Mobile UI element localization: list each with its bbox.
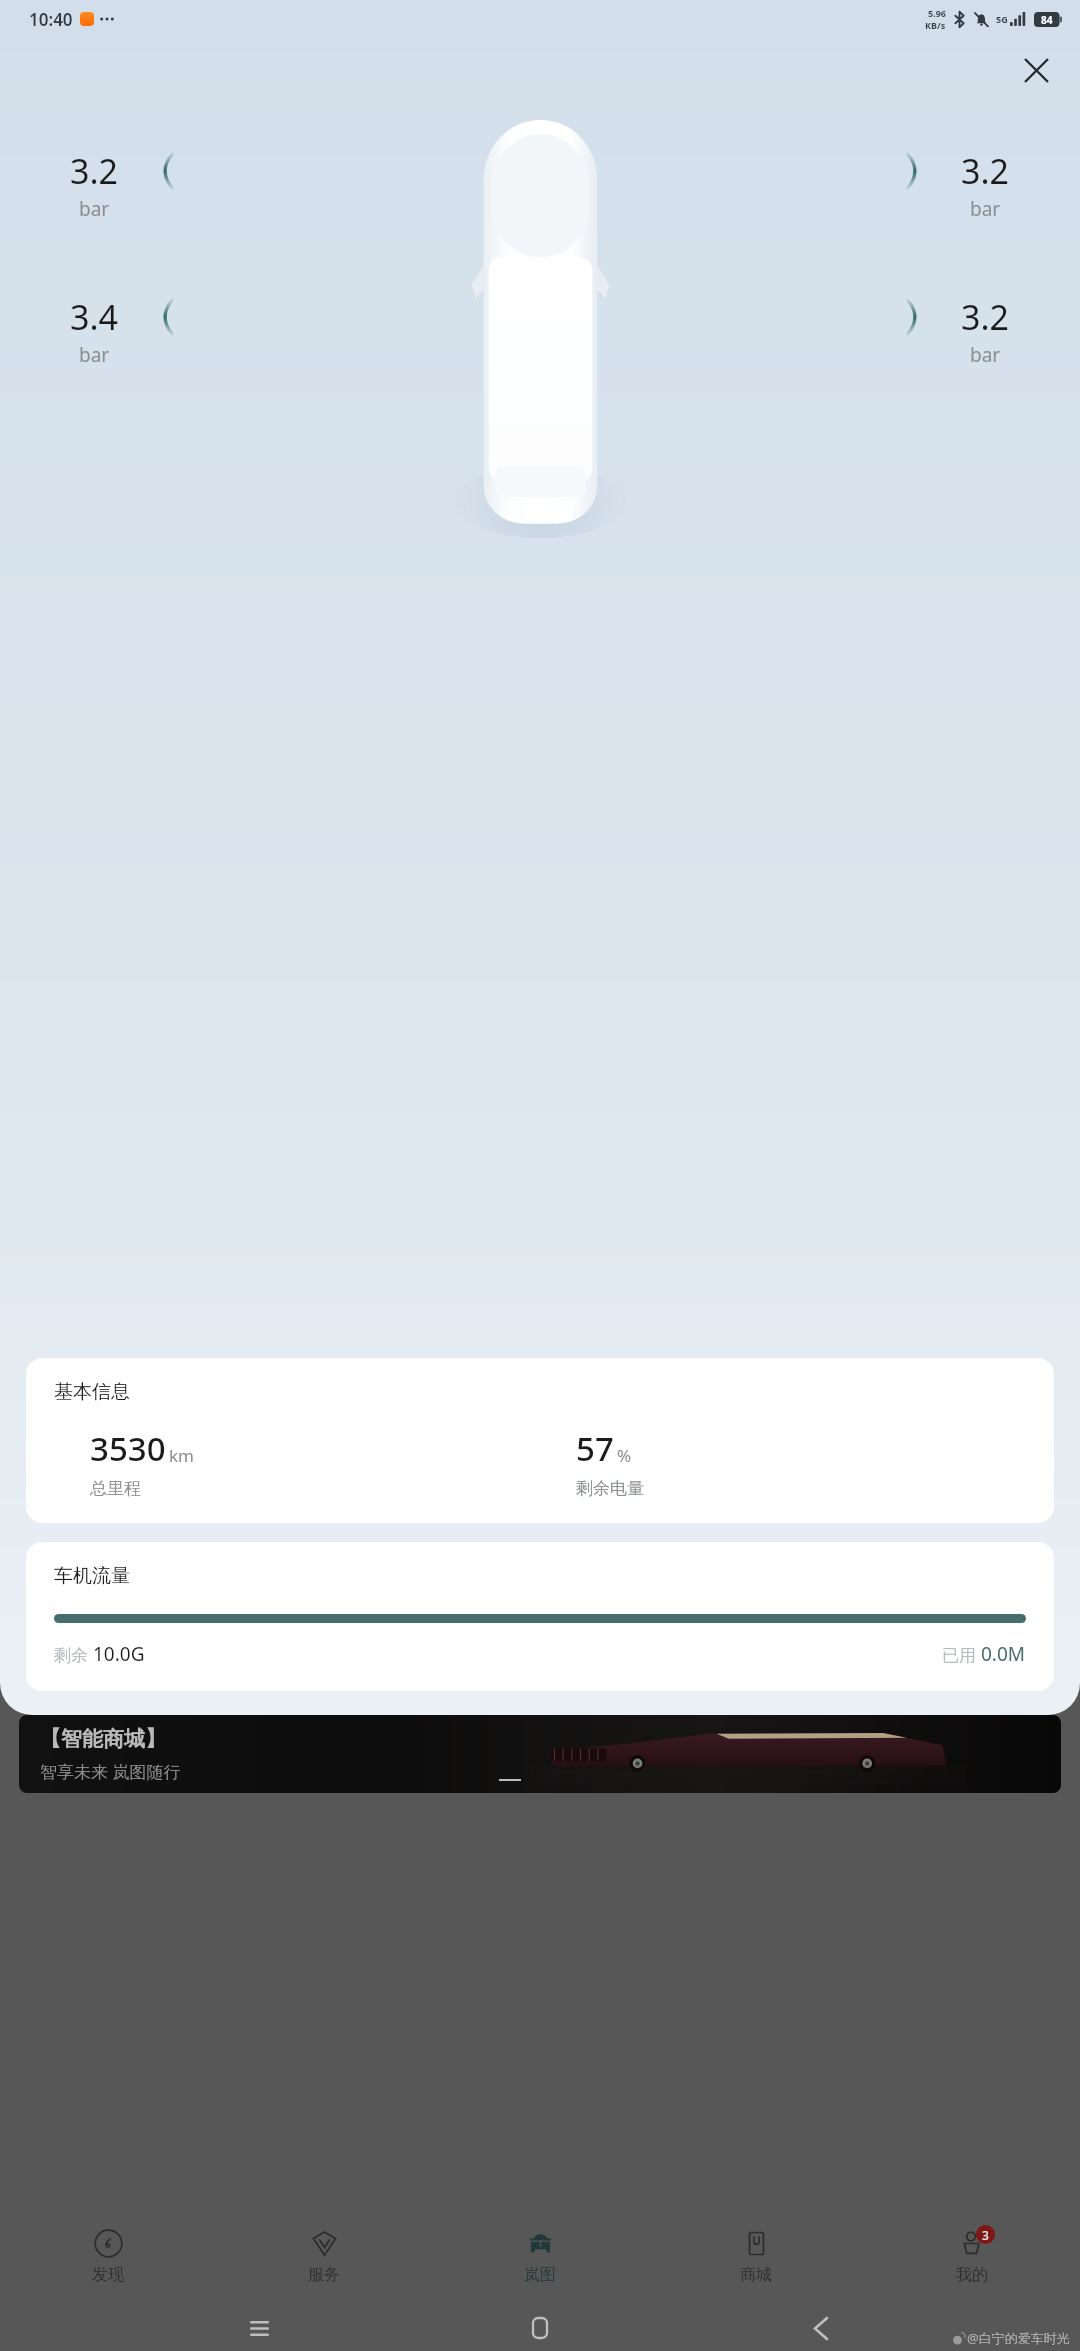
- staticText: 84: [1041, 13, 1053, 27]
- staticText: 5G: [996, 13, 1008, 25]
- button[interactable]: Home: [518, 2306, 562, 2350]
- button[interactable]: Close: [1014, 48, 1058, 92]
- staticText: 剩余电量: [576, 1478, 644, 1499]
- staticText: 服务: [308, 2265, 340, 2285]
- staticText: 10:40: [29, 8, 73, 31]
- button[interactable]: Back: [799, 2306, 843, 2350]
- button[interactable]: 车机流量: [26, 1542, 1054, 1691]
- button[interactable]: 基本信息: [26, 1358, 1054, 1523]
- staticText: 10.0G: [93, 1641, 145, 1667]
- staticText: 我的: [956, 2265, 988, 2285]
- staticText: 剩余: [54, 1643, 93, 1666]
- staticText: 车机流量: [54, 1564, 130, 1588]
- staticText: bar: [970, 196, 1001, 222]
- button[interactable]: 3: [864, 2209, 1080, 2304]
- staticText: 0.0M: [981, 1641, 1026, 1667]
- staticText: @白宁的爱车时光: [967, 2329, 1070, 2347]
- staticText: 57: [576, 1426, 614, 1471]
- button[interactable]: 【智能商城】: [19, 1715, 1061, 1793]
- staticText: 3: [982, 2227, 989, 2243]
- staticText: 总里程: [90, 1478, 141, 1499]
- button[interactable]: 发现: [0, 2209, 216, 2304]
- staticText: bar: [79, 196, 110, 222]
- staticText: 商城: [740, 2265, 772, 2285]
- staticText: 基本信息: [54, 1380, 130, 1404]
- staticText: 已用: [942, 1643, 981, 1666]
- button[interactable]: 岚图: [432, 2209, 648, 2304]
- staticText: 5.96: [928, 7, 946, 19]
- staticText: KB/s: [925, 19, 946, 31]
- staticText: 岚图: [524, 2265, 556, 2285]
- staticText: km: [169, 1444, 194, 1467]
- staticText: 发现: [92, 2265, 124, 2285]
- staticText: 智享未来 岚图随行: [40, 1760, 181, 1783]
- staticText: bar: [970, 342, 1001, 368]
- staticText: 3.2: [70, 148, 119, 194]
- staticText: 3.2: [961, 294, 1010, 340]
- staticText: 3530: [90, 1426, 166, 1471]
- staticText: 3.4: [70, 294, 119, 340]
- staticText: 3.2: [961, 148, 1010, 194]
- staticText: 【智能商城】: [40, 1726, 166, 1752]
- button[interactable]: 商城: [648, 2209, 864, 2304]
- staticText: %: [617, 1444, 632, 1467]
- staticText: bar: [79, 342, 110, 368]
- button[interactable]: Recents: [237, 2306, 281, 2350]
- button[interactable]: 服务: [216, 2209, 432, 2304]
